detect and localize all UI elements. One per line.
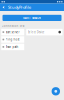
button[interactable]: Trace path (1, 44, 24, 50)
button[interactable]: Back (2, 5, 6, 9)
button[interactable]: Add (52, 87, 60, 95)
button[interactable]: Start server (1, 29, 24, 35)
staticText: Trace path (5, 45, 18, 49)
button[interactable]: Ping host (1, 36, 24, 43)
staticText: Connection Test (2, 24, 25, 28)
staticText: StudyProfile (8, 5, 31, 10)
button[interactable]: Select Device (26, 29, 62, 35)
button[interactable]: START SESSION (2, 15, 61, 21)
staticText: START SESSION (23, 16, 41, 20)
staticText: Start server (5, 30, 19, 34)
staticText: Ping host (5, 38, 19, 41)
staticText: Select Device (28, 30, 45, 34)
